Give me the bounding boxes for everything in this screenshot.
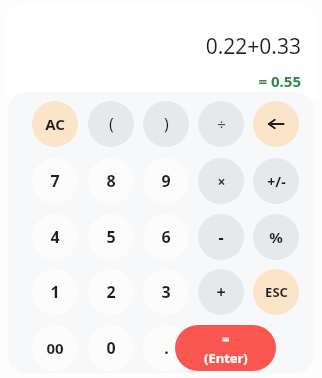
staticText: 0.22+0.33 xyxy=(205,32,301,61)
button[interactable]: 6 xyxy=(143,214,189,260)
staticText: 7 xyxy=(50,170,60,192)
button[interactable]: 0 xyxy=(88,325,134,371)
button[interactable]: × xyxy=(198,158,244,204)
button[interactable]: . xyxy=(143,325,189,371)
button[interactable]: ) xyxy=(143,101,189,147)
staticText: 4 xyxy=(50,226,60,248)
button[interactable]: - xyxy=(198,214,244,260)
staticText: ) xyxy=(164,113,169,135)
staticText: 2 xyxy=(106,281,116,303)
button[interactable]: ÷ xyxy=(198,101,244,147)
staticText: 1 xyxy=(50,281,60,303)
button[interactable]: 4 xyxy=(32,214,78,260)
staticText: × xyxy=(217,172,226,191)
staticText: = 0.55 xyxy=(258,71,301,91)
staticText: AC xyxy=(45,114,65,134)
staticText: 8 xyxy=(106,170,116,192)
staticText: 0 xyxy=(106,337,116,359)
button[interactable]: 3 xyxy=(143,269,189,315)
button[interactable]: 5 xyxy=(88,214,134,260)
staticText: ÷ xyxy=(217,114,226,134)
button[interactable]: 8 xyxy=(88,158,134,204)
staticText: % xyxy=(269,227,283,247)
staticText: 6 xyxy=(161,226,171,248)
staticText: + xyxy=(216,281,226,303)
staticText: 3 xyxy=(161,281,171,303)
button[interactable]: 2 xyxy=(88,269,134,315)
staticText: 5 xyxy=(106,226,116,248)
staticText: 9 xyxy=(161,170,171,192)
staticText: +/- xyxy=(267,172,286,191)
staticText: 00 xyxy=(46,338,64,358)
button[interactable]: 1 xyxy=(32,269,78,315)
button[interactable]: 00 xyxy=(32,325,78,371)
staticText: (Enter) xyxy=(204,349,248,367)
button[interactable]: = xyxy=(175,325,276,371)
button[interactable]: % xyxy=(253,214,299,260)
staticText: = xyxy=(222,330,230,348)
staticText: ( xyxy=(109,113,114,135)
staticText: . xyxy=(164,337,169,359)
button[interactable]: 7 xyxy=(32,158,78,204)
button[interactable]: AC xyxy=(32,101,78,147)
button[interactable]: +/- xyxy=(253,158,299,204)
staticText: ESC xyxy=(265,283,288,301)
button[interactable]: ESC xyxy=(253,269,299,315)
button[interactable]: Backspace xyxy=(253,101,299,147)
button[interactable]: ( xyxy=(88,101,134,147)
button[interactable]: + xyxy=(198,269,244,315)
staticText: - xyxy=(218,226,224,248)
button[interactable]: 9 xyxy=(143,158,189,204)
